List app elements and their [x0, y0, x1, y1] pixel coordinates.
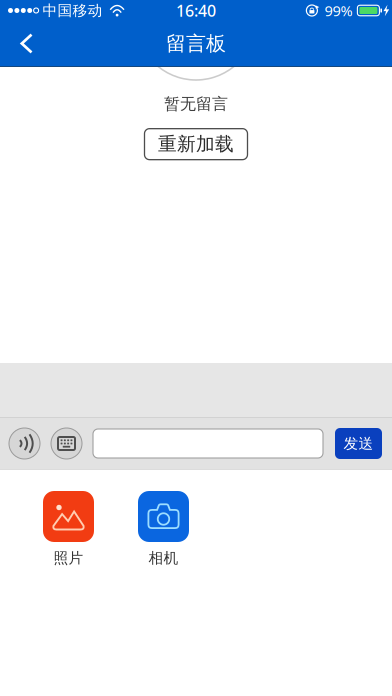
staticText: 发送 — [343, 434, 373, 452]
staticText: 暂无留言 — [164, 94, 228, 114]
button[interactable]: Back — [0, 21, 49, 66]
staticText: 中国移动 — [43, 1, 103, 19]
staticText: 相机 — [148, 549, 178, 567]
button[interactable]: 照片 — [43, 491, 94, 567]
staticText: 16:40 — [176, 0, 216, 21]
staticText: 留言板 — [166, 31, 226, 56]
staticText: 99% — [324, 1, 352, 20]
button[interactable]: Keyboard — [51, 428, 82, 459]
staticText: 照片 — [53, 549, 83, 567]
button[interactable]: Voice input — [9, 428, 40, 459]
button[interactable]: 重新加载 — [144, 129, 247, 160]
button[interactable]: 发送 — [335, 428, 382, 459]
staticText: 重新加载 — [158, 133, 234, 156]
button[interactable]: 相机 — [138, 491, 189, 567]
